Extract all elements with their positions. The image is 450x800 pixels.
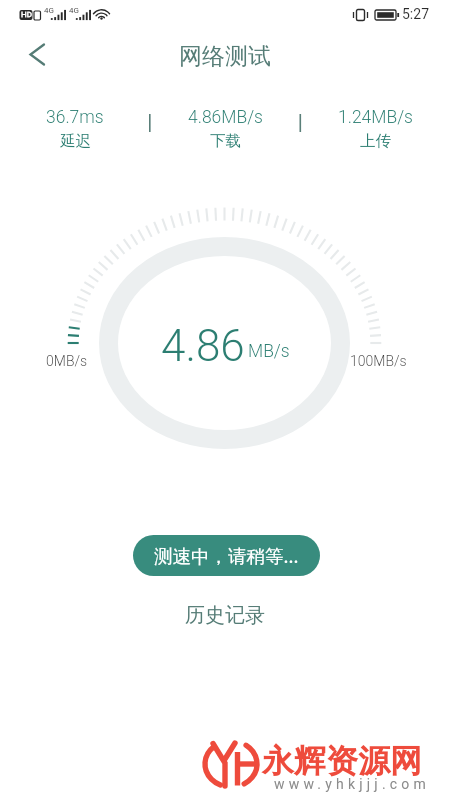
button[interactable]: 历史记录 <box>0 599 450 631</box>
staticText: MB/s <box>248 341 290 362</box>
staticText: 4.86 <box>161 320 245 372</box>
staticText: 历史记录 <box>185 603 265 628</box>
staticText: 延迟 <box>60 131 91 151</box>
staticText: 测速中，请稍等... <box>154 543 299 568</box>
staticText: 5:27 <box>402 6 429 22</box>
button[interactable]: 测速中，请稍等... <box>133 535 320 576</box>
staticText: 1.24MB/s <box>338 107 413 128</box>
staticText: 下载 <box>210 131 241 151</box>
staticText: 4.86MB/s <box>188 107 263 128</box>
button[interactable]: Back <box>22 39 54 69</box>
staticText: 网络测试 <box>179 42 271 71</box>
staticText: 永辉资源网 <box>262 741 422 781</box>
staticText: HD <box>21 10 32 19</box>
staticText: 4G <box>69 6 79 15</box>
staticText: www.yhkjjj.com <box>274 776 430 792</box>
staticText: 100MB/s <box>350 353 407 369</box>
staticText: 36.7ms <box>46 107 104 128</box>
staticText: 4G <box>44 6 54 15</box>
staticText: 上传 <box>360 131 391 151</box>
staticText: 0MB/s <box>46 353 88 369</box>
